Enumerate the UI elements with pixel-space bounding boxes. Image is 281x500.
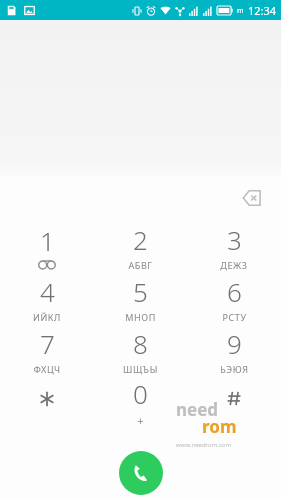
staticText: ИЙКЛ (33, 311, 61, 323)
staticText: РСТУ (222, 311, 247, 323)
button[interactable]: Backspace (235, 181, 269, 215)
button[interactable]: 1 (0, 220, 93, 272)
staticText: 12:34 (248, 3, 277, 18)
button[interactable]: 8 (93, 324, 187, 376)
staticText: 0 (133, 376, 148, 411)
staticText: АБВГ (128, 259, 153, 271)
button[interactable]: 3 (187, 220, 281, 272)
button[interactable]: 9 (187, 324, 281, 376)
staticText: 8 (133, 326, 148, 361)
staticText: 4 (40, 274, 55, 309)
staticText: ДЕЖЗ (220, 259, 248, 271)
staticText: ФХЦЧ (33, 363, 61, 375)
staticText: 3 (227, 222, 242, 257)
staticText: + (137, 413, 144, 428)
button[interactable]: Call (119, 451, 163, 495)
staticText: m (237, 6, 244, 16)
button[interactable] (187, 376, 281, 428)
staticText: 1 (40, 223, 55, 258)
button[interactable]: 7 (0, 324, 93, 376)
staticText: ЬЭЮЯ (220, 363, 249, 375)
staticText: 2 (133, 222, 148, 257)
staticText: 9 (227, 326, 242, 361)
staticText: 7 (40, 326, 55, 361)
staticText: 6 (227, 274, 242, 309)
button[interactable]: 4 (0, 272, 93, 324)
button[interactable]: 5 (93, 272, 187, 324)
staticText: need (176, 398, 219, 421)
button[interactable] (0, 376, 93, 428)
button[interactable]: 0 (93, 376, 187, 428)
button[interactable]: 2 (93, 220, 187, 272)
button[interactable]: 6 (187, 272, 281, 324)
staticText: www.needrom.com (176, 441, 232, 449)
staticText: МНОП (125, 311, 156, 323)
staticText: ШЩЪЫ (123, 363, 158, 375)
staticText: rom (202, 415, 237, 438)
staticText: 5 (133, 274, 148, 309)
